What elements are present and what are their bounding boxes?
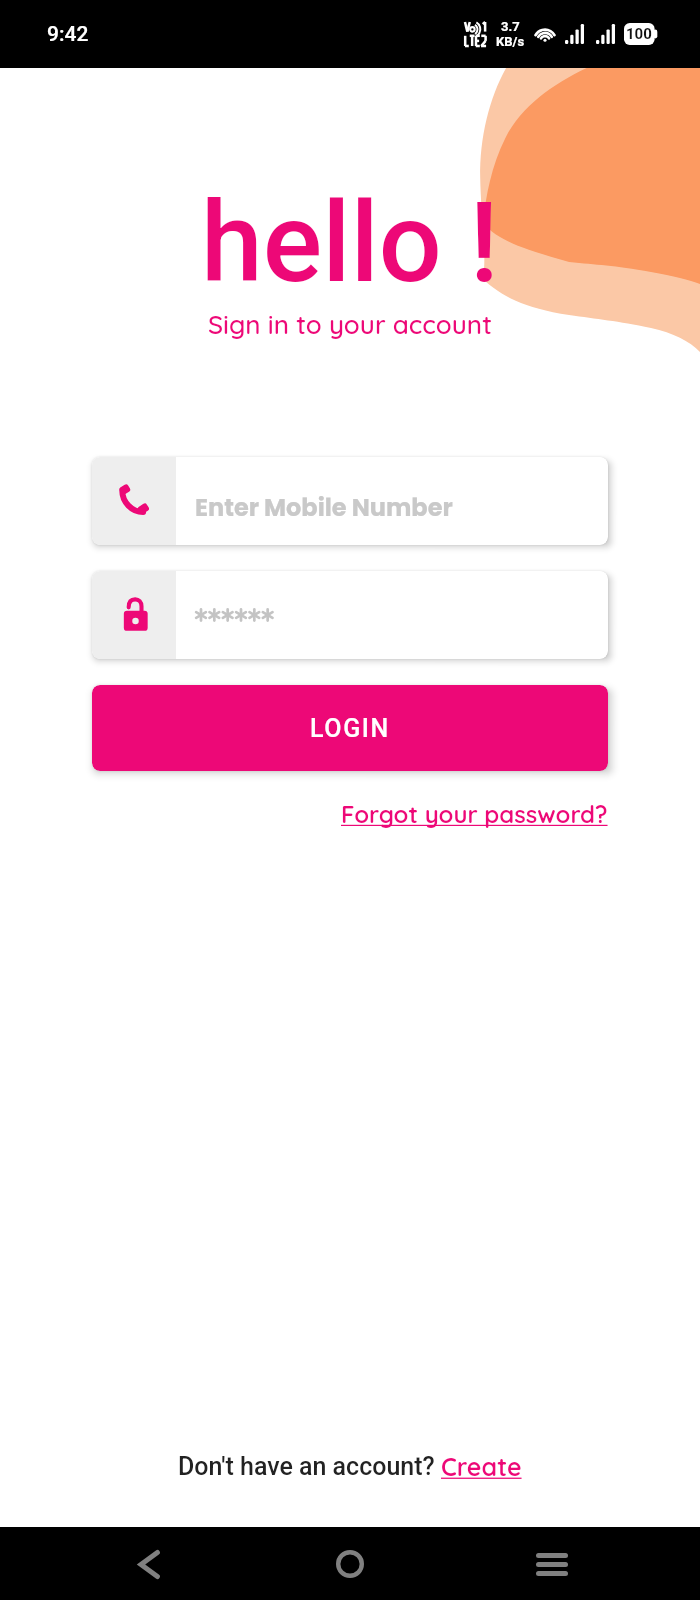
button[interactable]: Enter Mobile Number xyxy=(92,457,608,545)
button[interactable]: Forgot your password? xyxy=(341,799,608,829)
button[interactable]: Home xyxy=(314,1528,386,1600)
staticText: LOGIN xyxy=(310,714,390,743)
staticText: Sign in to your account xyxy=(208,308,492,341)
staticText: Enter Mobile Number xyxy=(195,491,453,525)
staticText: 3.7 xyxy=(501,19,520,34)
staticText: 100 xyxy=(626,25,652,43)
button[interactable]: Back xyxy=(113,1528,185,1600)
staticText: 9:42 xyxy=(47,22,89,47)
staticText: Don't have an account? xyxy=(178,1452,441,1481)
button[interactable]: LOGIN xyxy=(92,685,608,771)
button[interactable]: Create xyxy=(441,1451,522,1482)
staticText: KB/s xyxy=(496,34,525,49)
staticText: hello ! xyxy=(201,178,499,308)
button[interactable] xyxy=(92,571,608,659)
button[interactable]: Recent apps xyxy=(516,1528,588,1600)
